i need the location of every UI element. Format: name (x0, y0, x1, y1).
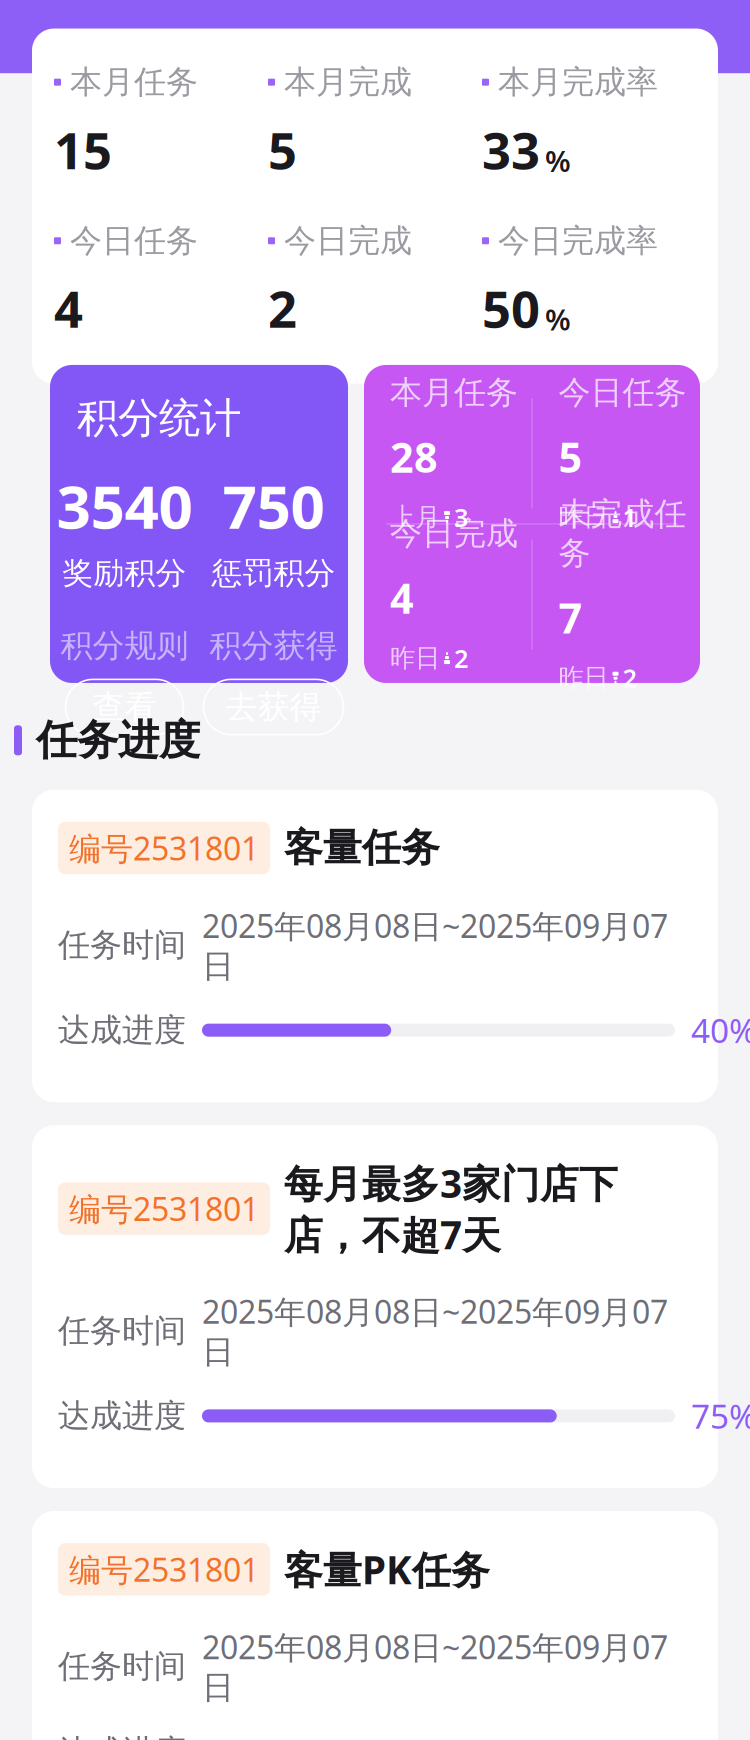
staticText: 本月任务 (390, 373, 518, 412)
staticText: 3540 (56, 466, 192, 545)
staticText: 2 (268, 274, 297, 342)
staticText: % (545, 141, 571, 180)
staticText: 任务进度 (36, 715, 200, 766)
staticText: 本月完成 (284, 62, 412, 102)
staticText: 4 (390, 570, 414, 625)
staticText: 达成进度 (58, 1010, 186, 1050)
staticText: 今日完成 (284, 221, 412, 260)
staticText: 2025年08月08日~2025年09月07日 (202, 904, 668, 986)
staticText: 本月完成率 (498, 62, 658, 102)
staticText: 1 (622, 500, 636, 534)
staticText: 本月任务 (70, 62, 198, 102)
staticText: 昨日 (558, 662, 608, 693)
staticText: 编号2531801 (69, 827, 259, 869)
staticText: 3 (454, 500, 468, 534)
staticText: 积分获得 (209, 626, 337, 665)
button[interactable]: 编号2531801 (32, 790, 718, 1102)
staticText: 积分统计 (77, 393, 241, 444)
staticText: 2025年08月08日~2025年09月07日 (202, 1625, 668, 1707)
staticText: 50 (482, 274, 540, 342)
staticText: 2 (454, 641, 468, 675)
staticText: 去获得 (225, 687, 321, 727)
staticText: 2 (622, 661, 636, 694)
staticText: 40% (691, 1008, 750, 1052)
staticText: 今日完成率 (498, 221, 658, 260)
staticText: 今日完成 (390, 514, 518, 553)
staticText: 昨日 (558, 501, 608, 533)
staticText: 5 (558, 429, 582, 484)
staticText: 任务时间 (58, 1311, 186, 1350)
button[interactable]: 积分获得 (199, 626, 348, 735)
staticText: 5 (268, 116, 297, 183)
button[interactable]: 编号2531801 (32, 1125, 718, 1488)
staticText: 今日任务 (558, 373, 686, 412)
staticText: 达成进度 (58, 1396, 186, 1436)
staticText: 客量PK任务 (284, 1544, 490, 1595)
button[interactable]: 编号2531801 (32, 1511, 718, 1740)
staticText: 积分规则 (60, 626, 188, 665)
staticText: 7 (558, 590, 582, 645)
staticText: 750 (222, 466, 324, 545)
staticText: 任务时间 (58, 925, 186, 965)
staticText: 4 (54, 274, 83, 342)
staticText: 编号2531801 (69, 1187, 259, 1230)
staticText: % (545, 300, 571, 339)
staticText: 54% (691, 1729, 750, 1740)
staticText: 昨日 (390, 642, 440, 674)
staticText: 达成进度 (58, 1732, 186, 1740)
staticText: 任务时间 (58, 1647, 186, 1686)
staticText: 未完成任务 (558, 494, 686, 573)
staticText: 惩罚积分 (211, 554, 335, 592)
staticText: 编号2531801 (69, 1548, 259, 1590)
staticText: 客量任务 (284, 824, 440, 872)
staticText: 33 (482, 116, 540, 183)
staticText: 75% (691, 1394, 750, 1438)
staticText: 查看 (92, 687, 156, 727)
staticText: 15 (54, 116, 112, 183)
staticText: 28 (390, 429, 438, 484)
staticText: 2025年08月08日~2025年09月07日 (202, 1290, 668, 1372)
staticText: 每月最多3家门店下店，不超7天 (284, 1157, 618, 1260)
button[interactable]: 积分规则 (50, 626, 199, 735)
staticText: 奖励积分 (62, 554, 186, 592)
staticText: 今日任务 (70, 221, 198, 260)
staticText: 上月 (390, 501, 440, 533)
